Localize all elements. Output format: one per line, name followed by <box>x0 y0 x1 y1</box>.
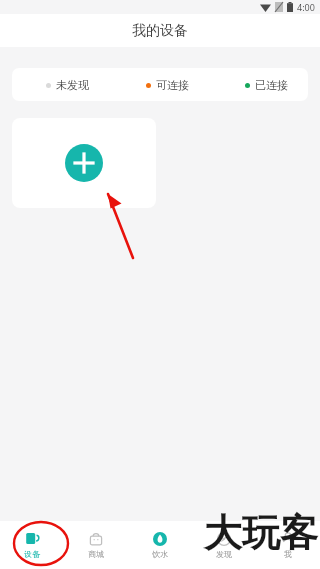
staticText: 已连接 <box>255 78 288 92</box>
staticText: 我 <box>284 549 292 559</box>
button[interactable]: Add device <box>12 118 156 208</box>
button[interactable]: 发现 <box>192 521 256 569</box>
staticText: 设备 <box>24 549 40 559</box>
staticText: 4:00 <box>297 1 315 13</box>
button[interactable]: 我 <box>256 521 320 569</box>
button[interactable]: 设备 <box>0 521 64 569</box>
staticText: 可连接 <box>156 78 189 92</box>
staticText: 发现 <box>216 549 232 559</box>
button[interactable]: 商城 <box>64 521 128 569</box>
staticText: 未发现 <box>56 78 89 92</box>
staticText: 商城 <box>88 549 104 559</box>
button[interactable]: 未发现 <box>12 68 308 101</box>
staticText: 我的设备 <box>132 22 188 40</box>
staticText: 饮水 <box>152 549 168 559</box>
button[interactable]: 饮水 <box>128 521 192 569</box>
staticText: 大玩客 <box>204 509 318 557</box>
